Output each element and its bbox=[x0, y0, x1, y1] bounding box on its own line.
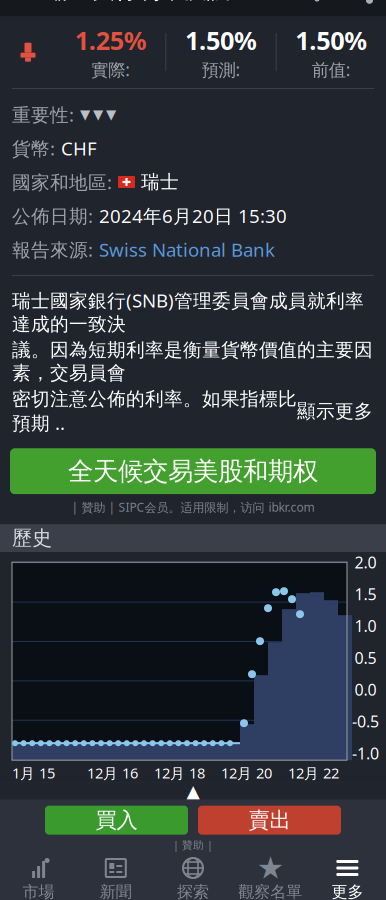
staticText: 賣出 bbox=[248, 807, 290, 833]
staticText: 12月 18 bbox=[154, 763, 205, 783]
staticText: | 贊助 | bbox=[173, 838, 213, 852]
staticText: 新聞 bbox=[100, 882, 132, 900]
button[interactable]: 更多 bbox=[309, 857, 386, 900]
staticText: 買入 bbox=[95, 807, 137, 833]
staticText: 0.5 bbox=[354, 647, 376, 668]
staticText: 2.0 bbox=[354, 552, 376, 573]
staticText: 12月 16 bbox=[87, 763, 138, 783]
staticText: | 贊助 | SIPC会员。适用限制，访问 ibkr.com bbox=[71, 499, 314, 515]
staticText: 2024年6月20日 15:30 bbox=[99, 203, 287, 228]
staticText: 1月 15 bbox=[12, 763, 55, 783]
staticText: 1.5 bbox=[354, 583, 376, 605]
staticText: 歷史 bbox=[12, 526, 52, 550]
staticText: 更多 bbox=[331, 882, 363, 900]
staticText: -1.0 bbox=[352, 743, 379, 764]
staticText: 探索 bbox=[177, 882, 209, 900]
staticText: 密切注意公佈的利率。如果指標比預期 .. bbox=[12, 387, 297, 435]
button[interactable]: Swiss National Bank bbox=[99, 237, 275, 262]
staticText: ▼ bbox=[106, 107, 116, 122]
staticText: ▲ bbox=[186, 781, 199, 801]
staticText: 公佈日期: bbox=[12, 203, 93, 228]
staticText: 前值: bbox=[312, 58, 351, 81]
staticText: 市場 bbox=[23, 882, 55, 900]
staticText: 瑞士央行利率決議 bbox=[46, 0, 230, 4]
staticText: 1.0 bbox=[354, 615, 376, 636]
staticText: 1.25% bbox=[75, 23, 147, 57]
staticText: 12月 22 bbox=[288, 763, 339, 783]
staticText: ★ bbox=[257, 851, 284, 885]
staticText: 全天候交易美股和期权 bbox=[68, 456, 318, 487]
button[interactable]: 全天候交易美股和期权 bbox=[10, 448, 376, 494]
button[interactable]: 賣出 bbox=[198, 806, 341, 835]
staticText: ▼ bbox=[80, 107, 90, 122]
staticText: CHF bbox=[61, 136, 97, 161]
staticText: ▼ bbox=[93, 107, 103, 122]
staticText: 報告來源: bbox=[12, 237, 93, 262]
button[interactable]: 市場 bbox=[0, 857, 77, 900]
staticText: -0.5 bbox=[352, 711, 379, 732]
staticText: 議。因為短期利率是衡量貨幣價值的主要因素，交易員會 bbox=[12, 339, 373, 385]
button[interactable]: ★ bbox=[232, 857, 309, 900]
staticText: 預測: bbox=[201, 58, 240, 81]
staticText: 0.0 bbox=[354, 679, 376, 700]
button[interactable]: 探索 bbox=[154, 857, 232, 900]
staticText: 實際: bbox=[91, 58, 130, 81]
staticText: 1.50% bbox=[185, 23, 257, 57]
staticText: 12月 20 bbox=[221, 763, 272, 783]
button[interactable]: 新聞 bbox=[77, 857, 154, 900]
button[interactable]: 買入 bbox=[45, 806, 188, 835]
staticText: 1.50% bbox=[295, 23, 367, 57]
staticText: 顯示更多 bbox=[297, 400, 373, 423]
staticText: 瑞士 bbox=[141, 170, 179, 193]
staticText: 重要性: bbox=[12, 102, 74, 127]
button[interactable]: Share bbox=[340, 0, 386, 16]
button[interactable]: Alerts bbox=[294, 0, 340, 16]
staticText: 貨幣: bbox=[12, 136, 55, 161]
button[interactable]: 顯示更多 bbox=[297, 400, 373, 423]
staticText: 瑞士國家銀行(SNB)管理委員會成員就利率達成的一致決 bbox=[12, 288, 364, 336]
staticText: 觀察名單 bbox=[238, 882, 302, 900]
staticText: 國家和地區: bbox=[12, 170, 112, 194]
staticText: Swiss National Bank bbox=[99, 237, 275, 262]
